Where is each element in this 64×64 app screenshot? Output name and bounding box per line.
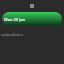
staticText: Mon 20 Jan bbox=[4, 17, 25, 22]
staticText: subscribers bbox=[1, 32, 23, 37]
button[interactable]: Mon 20 Jan bbox=[2, 12, 62, 26]
